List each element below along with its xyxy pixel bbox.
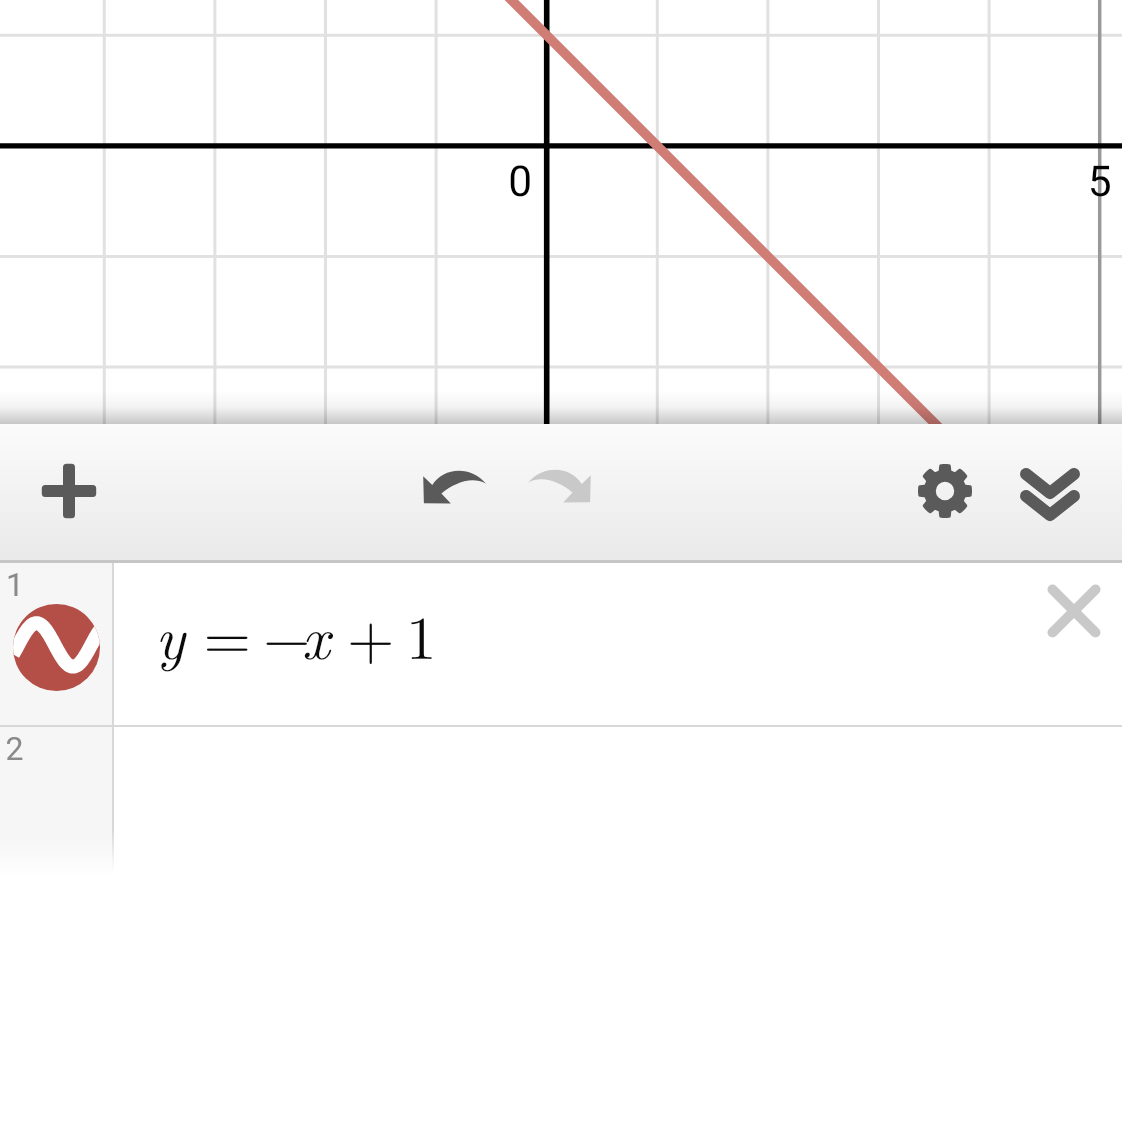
button[interactable]: Collapse list — [1002, 443, 1098, 539]
button[interactable]: Undo — [415, 466, 487, 508]
button[interactable]: Expression colour and style — [13, 604, 100, 691]
button[interactable]: Add expression — [21, 443, 117, 539]
button[interactable]: Delete expression — [1031, 568, 1117, 654]
button[interactable]: Expression colour and style — [0, 563, 1122, 725]
button[interactable]: Settings — [897, 443, 993, 539]
button[interactable] — [0, 727, 1122, 876]
button[interactable]: Redo — [527, 465, 599, 507]
